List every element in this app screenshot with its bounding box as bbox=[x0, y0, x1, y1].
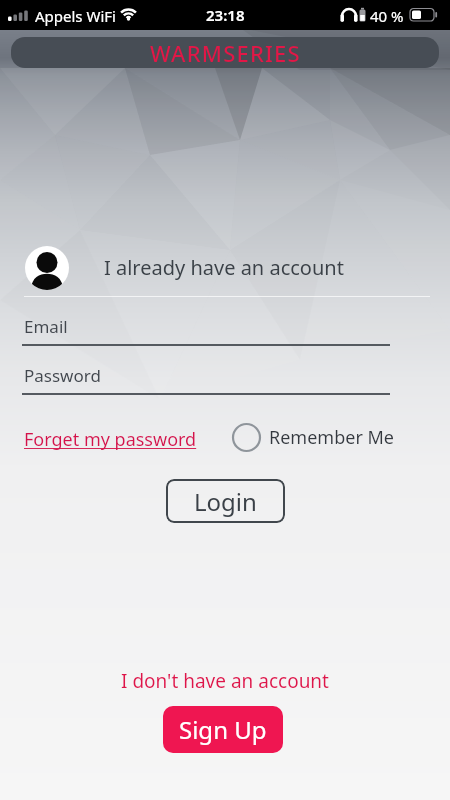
staticText: Remember Me bbox=[269, 425, 394, 450]
staticText: 23:18 bbox=[206, 5, 245, 25]
button[interactable]: Password bbox=[22, 361, 390, 395]
staticText: Email bbox=[24, 315, 68, 338]
button[interactable]: Remember Me bbox=[231, 421, 394, 453]
staticText: Password bbox=[24, 364, 101, 387]
button[interactable]: Email bbox=[22, 312, 390, 346]
staticText: 40 % bbox=[370, 6, 404, 26]
staticText: I already have an account bbox=[104, 254, 344, 281]
button[interactable]: WARMSERIES bbox=[11, 37, 439, 68]
button[interactable]: Login bbox=[166, 479, 285, 523]
button[interactable]: Sign Up bbox=[163, 706, 283, 753]
staticText: Sign Up bbox=[179, 713, 267, 746]
button[interactable]: Forget my password bbox=[24, 424, 197, 454]
staticText: Appels WiFi bbox=[35, 6, 116, 26]
staticText: I don't have an account bbox=[121, 668, 329, 694]
staticText: WARMSERIES bbox=[150, 38, 301, 68]
staticText: Forget my password bbox=[24, 427, 197, 452]
staticText: Login bbox=[194, 485, 257, 518]
